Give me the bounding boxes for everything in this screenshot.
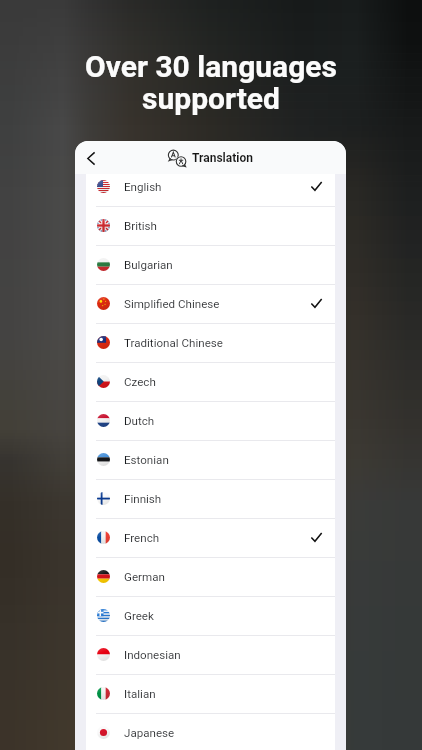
staticText: Dutch <box>124 414 155 428</box>
staticText: Finnish <box>124 492 162 506</box>
button[interactable]: Simplified Chinese <box>86 284 335 323</box>
button[interactable]: Finnish <box>86 479 335 518</box>
staticText: Simplified Chinese <box>124 297 220 311</box>
button[interactable]: Czech <box>86 362 335 401</box>
button[interactable]: Indonesian <box>86 635 335 674</box>
button[interactable]: French <box>86 518 335 557</box>
staticText: Czech <box>124 375 156 389</box>
staticText: Bulgarian <box>124 258 173 272</box>
staticText: Italian <box>124 687 156 701</box>
staticText: German <box>124 570 165 584</box>
button[interactable]: Italian <box>86 674 335 713</box>
staticText: Estonian <box>124 453 169 467</box>
staticText: French <box>124 531 160 545</box>
staticText: Indonesian <box>124 648 181 662</box>
staticText: Translation <box>192 151 253 165</box>
button[interactable]: English <box>86 167 335 206</box>
button[interactable]: Japanese <box>86 713 335 750</box>
button[interactable]: Back <box>78 145 104 171</box>
button[interactable]: British <box>86 206 335 245</box>
button[interactable]: Greek <box>86 596 335 635</box>
button[interactable]: Estonian <box>86 440 335 479</box>
button[interactable]: Traditional Chinese <box>86 323 335 362</box>
staticText: English <box>124 180 162 194</box>
staticText: Japanese <box>124 726 175 740</box>
button[interactable]: Dutch <box>86 401 335 440</box>
staticText: British <box>124 219 157 233</box>
button[interactable]: German <box>86 557 335 596</box>
button[interactable]: Bulgarian <box>86 245 335 284</box>
staticText: Greek <box>124 609 154 623</box>
staticText: Over 30 languages supported <box>85 49 337 117</box>
staticText: Traditional Chinese <box>124 336 223 350</box>
